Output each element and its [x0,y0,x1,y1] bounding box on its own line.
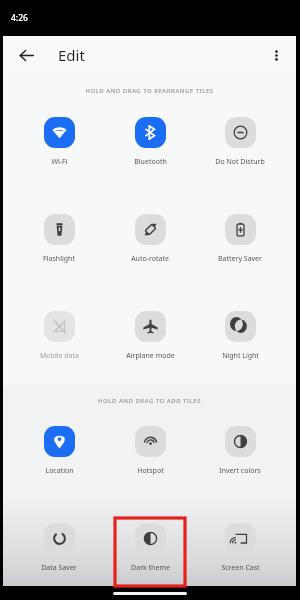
staticText: Mobile data [40,351,79,361]
staticText: Invert colors [219,466,261,476]
staticText: Dark theme [131,563,170,573]
button[interactable]: Back [12,41,40,69]
button[interactable]: Data Saver [24,516,94,573]
button[interactable]: Invert colors [205,419,275,476]
button[interactable]: Auto-rotate [115,207,185,264]
staticText: Location [45,466,74,476]
button[interactable]: Airplane mode [115,304,185,361]
button[interactable]: Wi-Fi [24,110,94,167]
staticText: Edit [58,45,85,65]
staticText: Hotspot [137,466,164,476]
staticText: Airplane mode [126,351,175,361]
button[interactable]: Dark theme [115,516,185,573]
staticText: Wi-Fi [51,157,68,167]
staticText: Battery Saver [218,254,262,264]
button[interactable]: Flashlight [24,207,94,264]
button[interactable]: Hotspot [115,419,185,476]
staticText: Auto-rotate [131,254,169,264]
staticText: Screen Cast [221,563,260,573]
button[interactable]: Do Not Disturb [205,110,275,167]
button[interactable]: Location [24,419,94,476]
staticText: Flashlight [43,254,75,264]
button[interactable]: More options [263,42,289,68]
button[interactable]: Night Light [205,304,275,361]
staticText: 4:26 [11,12,28,24]
button[interactable]: Screen Cast [205,516,275,573]
button[interactable]: Mobile data [24,304,94,361]
staticText: Bluetooth [134,157,167,167]
staticText: Do Not Disturb [215,157,265,167]
staticText: Night Light [222,351,259,361]
button[interactable]: Battery Saver [205,207,275,264]
staticText: HOLD AND DRAG TO ADD TILES [98,397,201,405]
staticText: HOLD AND DRAG TO REARRANGE TILES [85,87,214,95]
staticText: Data Saver [41,563,77,573]
button[interactable]: Bluetooth [115,110,185,167]
